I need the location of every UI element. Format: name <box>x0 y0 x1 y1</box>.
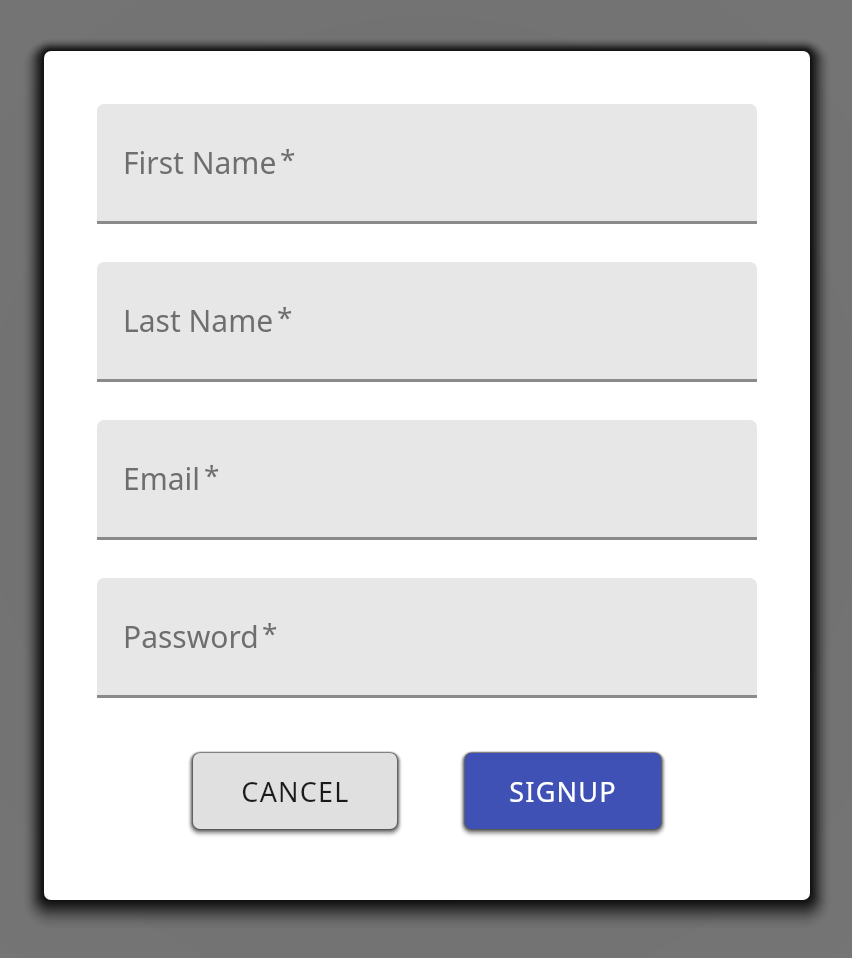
staticText: * <box>277 298 293 336</box>
staticText: First Name <box>123 142 277 183</box>
button[interactable]: Last Name <box>97 262 757 382</box>
button[interactable]: First Name <box>97 104 757 224</box>
staticText: * <box>280 140 296 178</box>
button[interactable]: Email <box>97 420 757 540</box>
button[interactable]: Password <box>97 578 757 698</box>
button[interactable]: SIGNUP <box>465 753 661 829</box>
button[interactable]: CANCEL <box>193 753 397 829</box>
staticText: * <box>204 456 220 494</box>
staticText: * <box>262 614 278 652</box>
staticText: Email <box>123 458 201 499</box>
staticText: CANCEL <box>241 773 350 810</box>
staticText: Last Name <box>123 300 274 341</box>
staticText: SIGNUP <box>509 773 617 810</box>
staticText: Password <box>123 616 259 657</box>
